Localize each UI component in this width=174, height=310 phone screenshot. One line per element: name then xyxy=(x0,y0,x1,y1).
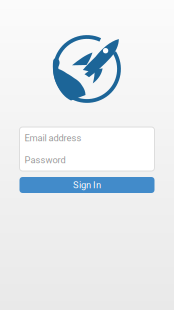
staticText: Sign In xyxy=(73,179,101,190)
staticText: Email address xyxy=(24,132,81,143)
button[interactable]: Sign In xyxy=(19,177,154,193)
staticText: Password xyxy=(24,154,65,165)
